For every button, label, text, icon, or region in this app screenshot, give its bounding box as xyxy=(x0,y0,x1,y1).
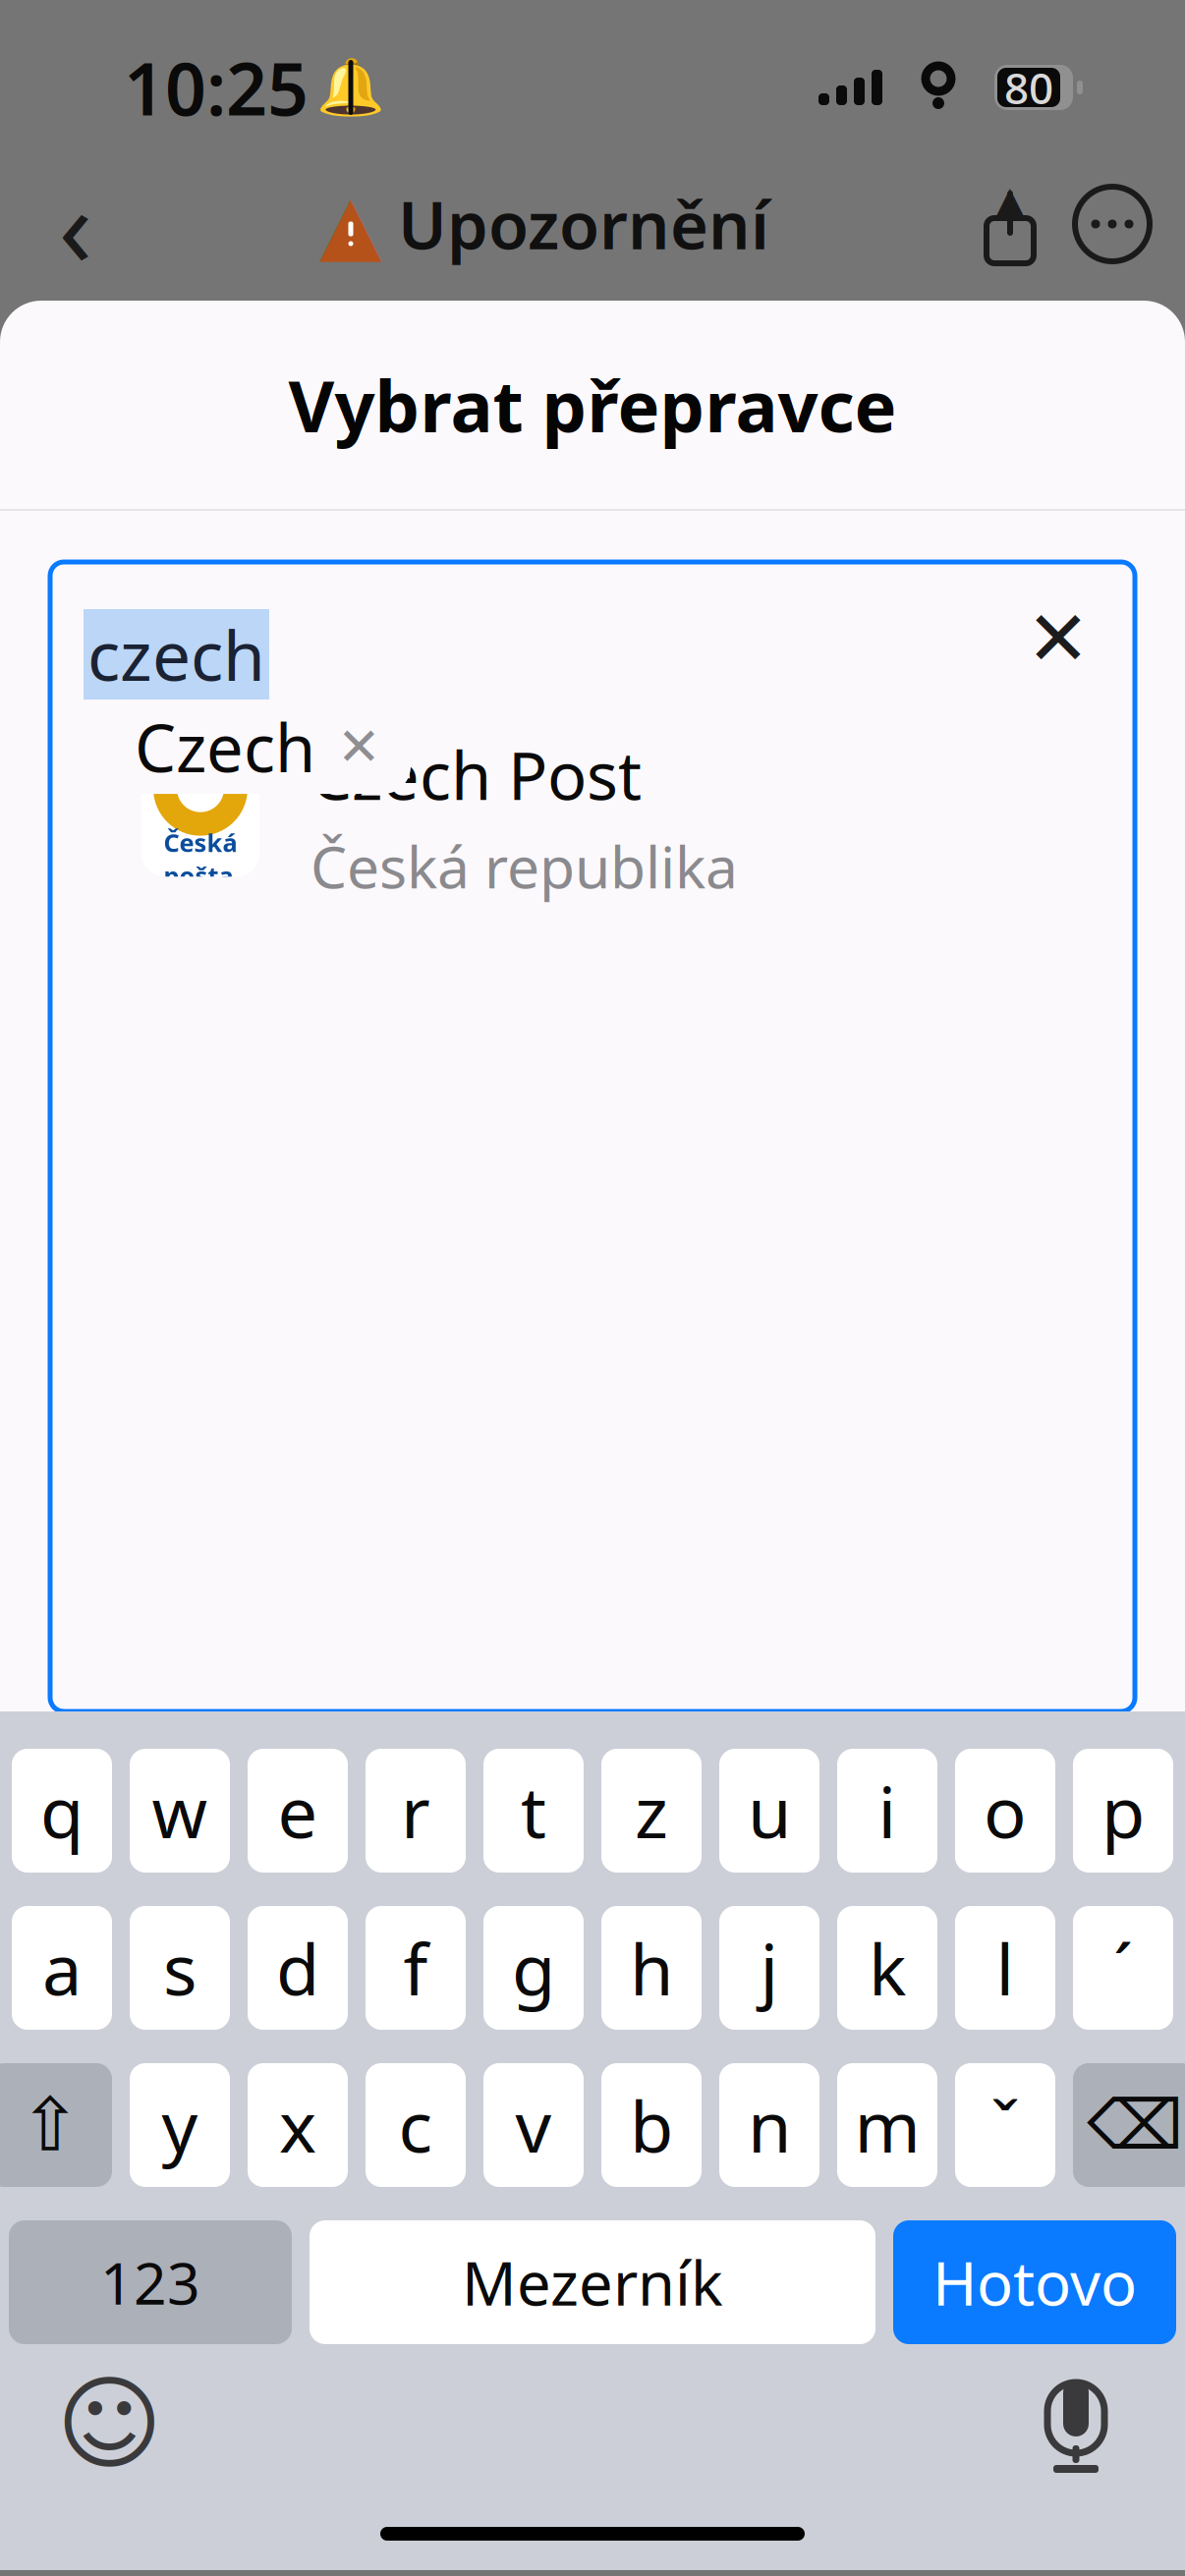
button[interactable]: f xyxy=(366,1906,466,2030)
button[interactable]: 123 xyxy=(9,2220,292,2344)
button[interactable]: ˇ xyxy=(955,2063,1055,2187)
button[interactable]: Share xyxy=(959,175,1061,273)
staticText: Mezerník xyxy=(462,2242,723,2322)
staticText: r xyxy=(401,1764,430,1858)
button[interactable]: h xyxy=(601,1906,702,2030)
button[interactable]: Hotovo xyxy=(893,2220,1176,2344)
button[interactable]: j xyxy=(719,1906,819,2030)
staticText: 🔔 xyxy=(316,56,385,119)
staticText: i xyxy=(878,1764,897,1858)
staticText: ⇧ xyxy=(19,2083,81,2167)
button[interactable]: Dictation xyxy=(1022,2370,1130,2478)
staticText: ´ xyxy=(1113,1921,1133,2015)
button[interactable]: t xyxy=(483,1749,584,1873)
staticText: czech xyxy=(87,609,265,700)
staticText: z xyxy=(635,1764,668,1858)
button[interactable]: Clear text xyxy=(1011,591,1105,686)
staticText: ‹ xyxy=(58,151,93,297)
staticText: q xyxy=(40,1764,84,1858)
button[interactable]: Back xyxy=(22,175,130,273)
staticText: c xyxy=(398,2078,433,2172)
button[interactable]: o xyxy=(955,1749,1055,1873)
button[interactable]: c xyxy=(366,2063,466,2187)
staticText: ✕ xyxy=(1026,595,1090,682)
button[interactable]: x xyxy=(248,2063,348,2187)
staticText: x xyxy=(279,2078,316,2172)
staticText: u xyxy=(748,1764,791,1858)
button[interactable]: Emoji keyboard xyxy=(55,2370,163,2478)
staticText: ☺ xyxy=(56,2366,162,2482)
staticText: Upozornění xyxy=(398,180,769,267)
button[interactable]: m xyxy=(837,2063,937,2187)
staticText: ▲ xyxy=(996,179,1024,220)
staticText: f xyxy=(403,1921,428,2015)
button[interactable]: Czech xyxy=(105,700,411,794)
staticText: t xyxy=(521,1764,546,1858)
staticText: 10:25 xyxy=(124,40,309,135)
staticText: Česká pošta xyxy=(164,826,237,892)
staticText: g xyxy=(512,1921,555,2015)
button[interactable]: y xyxy=(130,2063,230,2187)
staticText: y xyxy=(162,2078,198,2172)
button[interactable]: u xyxy=(719,1749,819,1873)
staticText: Czech xyxy=(135,703,315,790)
staticText: Vybrat přepravce xyxy=(288,358,897,452)
button[interactable]: ´ xyxy=(1073,1906,1173,2030)
button[interactable]: Shift xyxy=(0,2063,112,2187)
staticText: n xyxy=(748,2078,791,2172)
button[interactable]: More options xyxy=(1061,175,1163,273)
button[interactable]: e xyxy=(248,1749,348,1873)
button[interactable]: v xyxy=(483,2063,584,2187)
button[interactable]: a xyxy=(12,1906,112,2030)
staticText: Czech Post xyxy=(310,731,642,818)
staticText: e xyxy=(278,1764,318,1858)
button[interactable]: Mezerník xyxy=(310,2220,875,2344)
staticText: l xyxy=(996,1921,1015,2015)
button[interactable]: z xyxy=(601,1749,702,1873)
staticText: p xyxy=(1101,1764,1145,1858)
staticText: Hotovo xyxy=(932,2242,1137,2322)
button[interactable]: b xyxy=(601,2063,702,2187)
staticText: d xyxy=(276,1921,319,2015)
staticText: 123 xyxy=(100,2244,200,2320)
staticText: j xyxy=(760,1921,779,2015)
button[interactable]: r xyxy=(366,1749,466,1873)
button[interactable]: d xyxy=(248,1906,348,2030)
staticText: s xyxy=(163,1921,197,2015)
button[interactable]: Delete xyxy=(1073,2063,1185,2187)
button[interactable]: q xyxy=(12,1749,112,1873)
button[interactable]: i xyxy=(837,1749,937,1873)
staticText: ▲ xyxy=(319,178,382,270)
staticText: ˇ xyxy=(990,2078,1020,2172)
button[interactable]: s xyxy=(130,1906,230,2030)
staticText: m xyxy=(854,2078,920,2172)
staticText: ✕ xyxy=(337,717,381,776)
staticText: Česká republika xyxy=(310,828,738,904)
staticText: w xyxy=(152,1764,208,1858)
staticText: o xyxy=(984,1764,1027,1858)
button[interactable]: w xyxy=(130,1749,230,1873)
staticText: a xyxy=(42,1921,82,2015)
staticText: 80 xyxy=(1004,59,1053,116)
staticText: v xyxy=(515,2078,552,2172)
button[interactable]: p xyxy=(1073,1749,1173,1873)
staticText: ⌫ xyxy=(1087,2086,1183,2164)
button[interactable]: g xyxy=(483,1906,584,2030)
staticText: k xyxy=(869,1921,906,2015)
button[interactable]: k xyxy=(837,1906,937,2030)
button[interactable]: n xyxy=(719,2063,819,2187)
button[interactable]: l xyxy=(955,1906,1055,2030)
staticText: b xyxy=(630,2078,673,2172)
staticText: h xyxy=(630,1921,673,2015)
